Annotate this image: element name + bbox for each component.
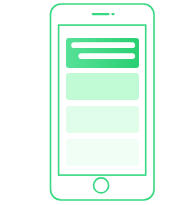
button[interactable]: Mobile app illustration	[0, 0, 194, 205]
